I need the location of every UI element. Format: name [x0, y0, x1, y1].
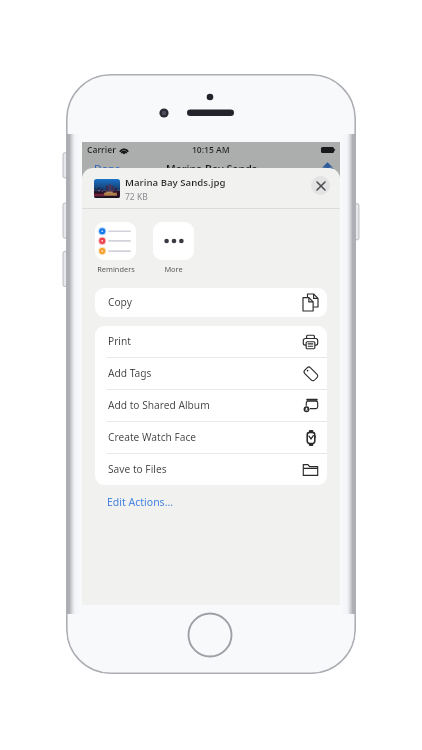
staticText: More [164, 264, 183, 274]
staticText: Reminders [97, 264, 135, 274]
staticText: 72 KB [125, 191, 148, 203]
staticText: Add to Shared Album [108, 398, 210, 412]
button[interactable]: Save to Files [95, 454, 327, 485]
button[interactable]: Copy [95, 288, 327, 317]
staticText: Copy [108, 295, 132, 309]
button[interactable]: Reminders [95, 222, 136, 274]
staticText: Marina Bay Sands [166, 162, 257, 176]
button[interactable]: Create Watch Face [95, 422, 327, 453]
button[interactable]: Add to Shared Album [95, 390, 327, 421]
staticText: Marina Bay Sands.jpg [125, 176, 226, 189]
staticText: Edit Actions... [107, 495, 174, 509]
button[interactable]: Edit Actions... [107, 495, 174, 509]
button[interactable]: Add Tags [95, 358, 327, 389]
button[interactable]: Print [95, 326, 327, 357]
button[interactable]: Marina Bay Sands.jpg [82, 168, 340, 208]
button[interactable]: Close [311, 176, 330, 195]
button[interactable]: More [153, 222, 194, 274]
staticText: Save to Files [108, 462, 167, 476]
staticText: Add Tags [108, 366, 152, 380]
staticText: Carrier [87, 144, 116, 156]
staticText: Done [94, 162, 121, 176]
staticText: Create Watch Face [108, 430, 197, 444]
staticText: Print [108, 334, 131, 348]
staticText: 10:15 AM [192, 144, 230, 156]
